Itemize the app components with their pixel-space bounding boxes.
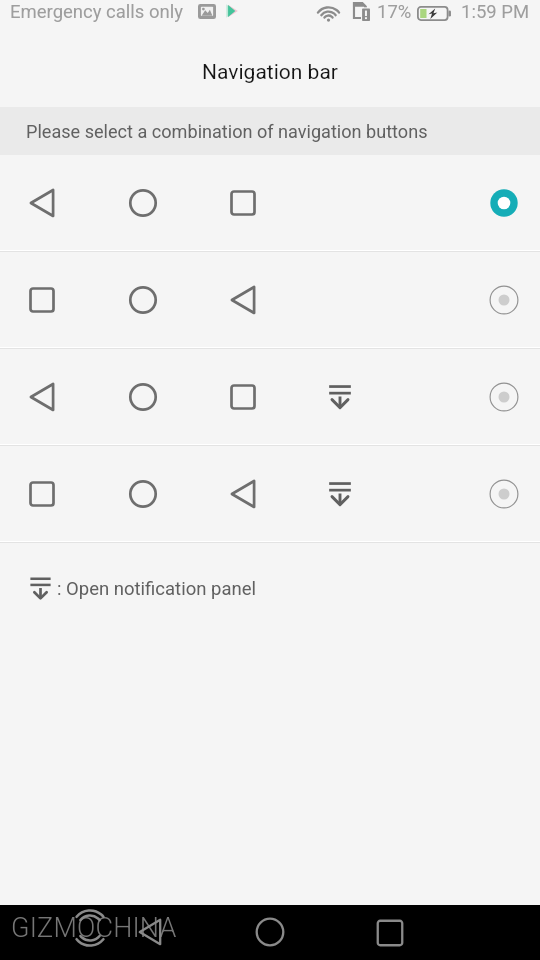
button[interactable]: Select navigation combination	[484, 280, 524, 320]
button[interactable]: Select navigation combination	[0, 349, 540, 444]
staticText: Navigation bar	[202, 60, 338, 85]
button[interactable]: Select navigation combination	[0, 252, 540, 347]
button[interactable]: Select navigation combination	[484, 474, 524, 514]
button[interactable]: Select navigation combination	[484, 377, 524, 417]
staticText: 17%	[377, 1, 412, 23]
button[interactable]: Select navigation combination	[484, 183, 524, 223]
button[interactable]: Select navigation combination	[0, 155, 540, 250]
staticText: : Open notification panel	[57, 578, 257, 600]
staticText: 1:59 PM	[461, 1, 530, 23]
staticText: Emergency calls only	[10, 1, 183, 23]
button[interactable]: Home	[246, 908, 294, 956]
button[interactable]: Select navigation combination	[0, 446, 540, 541]
staticText: Please select a combination of navigatio…	[26, 121, 428, 142]
staticText: GIZMOCHINA	[11, 912, 177, 944]
button[interactable]: Back	[126, 908, 174, 956]
button[interactable]: Recents	[366, 909, 414, 957]
